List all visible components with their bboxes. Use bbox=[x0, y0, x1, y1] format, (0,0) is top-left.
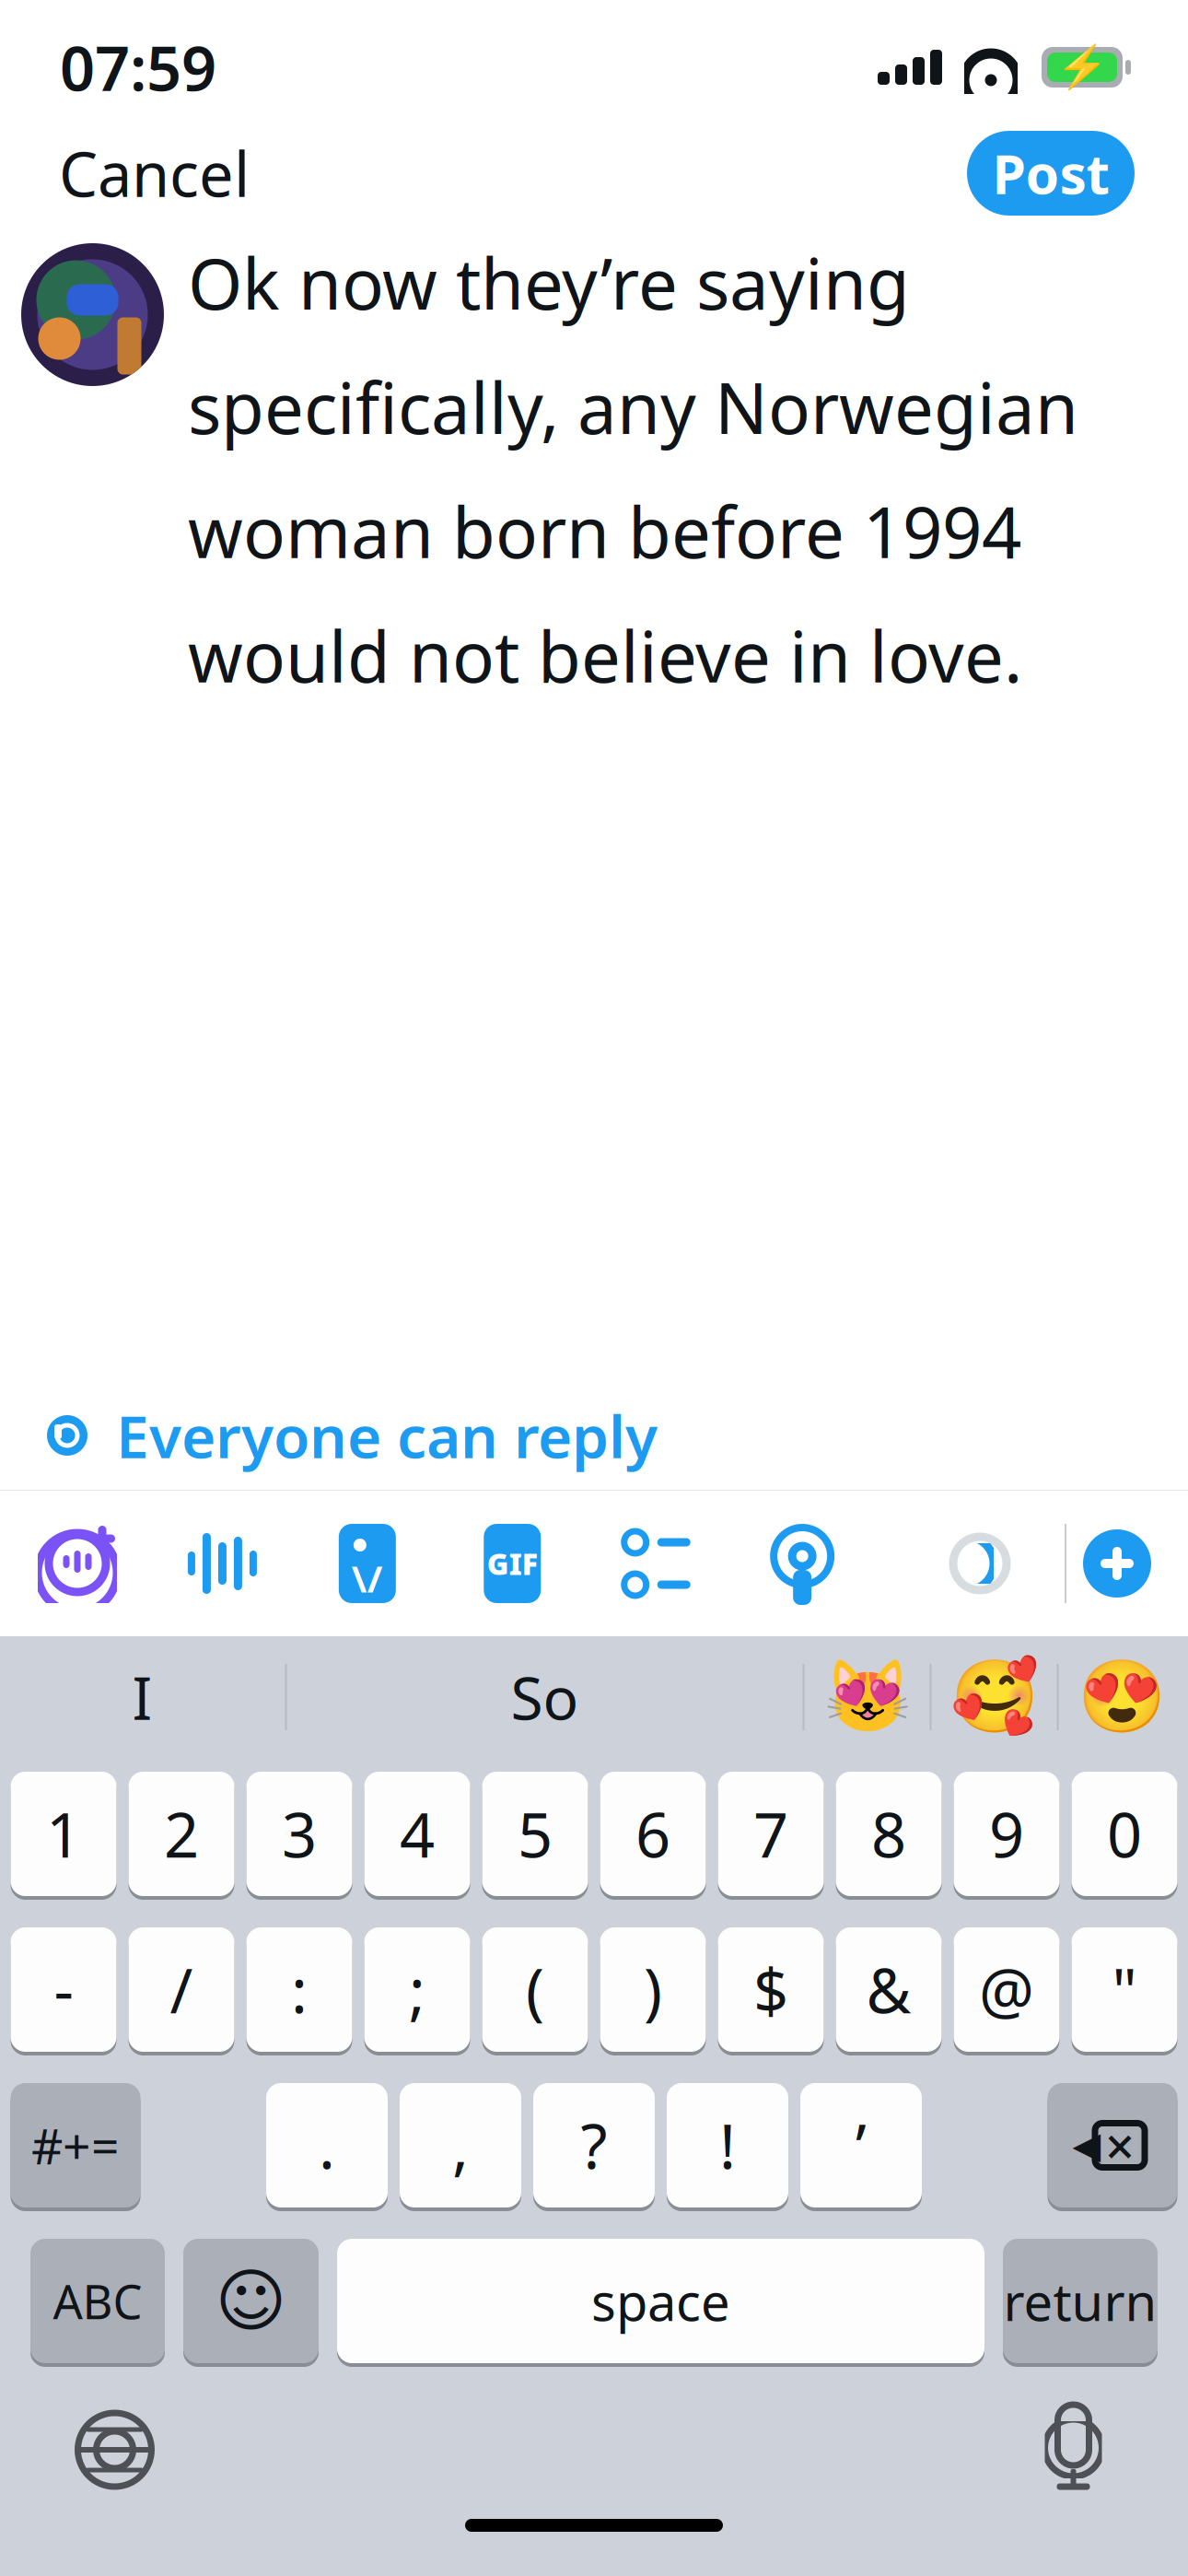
button[interactable]: Grok bbox=[26, 1512, 129, 1615]
staticText: Post bbox=[992, 137, 1109, 209]
button[interactable]: " bbox=[1072, 1925, 1177, 2055]
button[interactable]: 1 bbox=[11, 1769, 116, 1899]
staticText: 2 bbox=[164, 1793, 199, 1875]
button[interactable]: @ bbox=[954, 1925, 1060, 2055]
button[interactable]: Cancel bbox=[42, 119, 266, 227]
staticText: $ bbox=[753, 1949, 788, 2030]
staticText: 😍 bbox=[1077, 1656, 1165, 1738]
staticText: Cancel bbox=[59, 132, 250, 214]
button[interactable]: Photos bbox=[316, 1512, 419, 1615]
staticText: I bbox=[132, 1658, 152, 1736]
button[interactable]: I bbox=[0, 1646, 285, 1748]
staticText: . bbox=[319, 2104, 335, 2186]
staticText: " bbox=[1112, 1949, 1137, 2030]
button[interactable]: 8 bbox=[836, 1769, 942, 1899]
button[interactable]: Location bbox=[751, 1512, 854, 1615]
button[interactable]: ABC bbox=[30, 2236, 165, 2366]
staticText: 0 bbox=[1107, 1793, 1142, 1875]
button[interactable]: : bbox=[246, 1925, 352, 2055]
staticText: Ok now they’re saying specifically, any … bbox=[188, 236, 1078, 702]
button[interactable]: $ bbox=[718, 1925, 824, 2055]
staticText: ’ bbox=[856, 2104, 867, 2186]
button[interactable]: . bbox=[266, 2080, 388, 2210]
staticText: @ bbox=[979, 1949, 1034, 2030]
staticText: : bbox=[291, 1949, 308, 2030]
staticText: So bbox=[511, 1658, 579, 1736]
button[interactable]: ’ bbox=[800, 2080, 922, 2210]
staticText: ; bbox=[409, 1949, 425, 2030]
staticText: 07:59 bbox=[60, 26, 216, 108]
staticText: 1 bbox=[46, 1793, 81, 1875]
staticText: ◀ bbox=[1072, 2124, 1101, 2166]
staticText: return bbox=[1003, 2267, 1157, 2335]
button[interactable]: ) bbox=[600, 1925, 706, 2055]
staticText: #+= bbox=[31, 2113, 120, 2178]
staticText: 6 bbox=[635, 1793, 670, 1875]
staticText: , bbox=[452, 2104, 469, 2186]
staticText: \/ bbox=[352, 1554, 383, 1603]
button[interactable]: Audio bbox=[171, 1512, 274, 1615]
button[interactable]: Smiling face with hearts emoji bbox=[932, 1646, 1057, 1748]
staticText: ) bbox=[644, 1949, 662, 2030]
button[interactable]: , bbox=[400, 2080, 521, 2210]
staticText: / bbox=[170, 1949, 193, 2030]
staticText: ! bbox=[719, 2104, 736, 2186]
button[interactable]: Dictation bbox=[1013, 2390, 1133, 2510]
button[interactable]: space bbox=[337, 2236, 984, 2366]
button[interactable]: ! bbox=[667, 2080, 788, 2210]
button[interactable]: ( bbox=[482, 1925, 588, 2055]
button[interactable]: & bbox=[836, 1925, 942, 2055]
button[interactable]: Everyone can reply bbox=[0, 1374, 704, 1497]
staticText: Everyone can reply bbox=[116, 1396, 658, 1475]
button[interactable]: return bbox=[1003, 2236, 1158, 2366]
button[interactable]: Next keyboard bbox=[55, 2390, 175, 2510]
staticText: × bbox=[1105, 2111, 1135, 2180]
staticText: ⚡ bbox=[1056, 43, 1108, 91]
button[interactable]: 0 bbox=[1072, 1769, 1177, 1899]
staticText: 5 bbox=[518, 1793, 553, 1875]
staticText: space bbox=[591, 2267, 730, 2335]
staticText: 9 bbox=[989, 1793, 1024, 1875]
button[interactable]: ? bbox=[533, 2080, 655, 2210]
button[interactable]: Delete bbox=[1048, 2080, 1177, 2210]
staticText: 🥰 bbox=[950, 1656, 1038, 1738]
button[interactable]: GIF bbox=[461, 1512, 564, 1615]
button[interactable]: #+= bbox=[11, 2080, 140, 2210]
button[interactable]: 2 bbox=[128, 1769, 234, 1899]
button[interactable]: Cat heart eyes emoji bbox=[804, 1646, 930, 1748]
button[interactable]: / bbox=[128, 1925, 234, 2055]
button[interactable]: 9 bbox=[954, 1769, 1060, 1899]
staticText: 4 bbox=[400, 1793, 435, 1875]
staticText: ☺ bbox=[215, 2262, 287, 2340]
staticText: - bbox=[54, 1949, 73, 2030]
staticText: GIF bbox=[487, 1544, 538, 1583]
button[interactable]: 4 bbox=[364, 1769, 470, 1899]
button[interactable]: Emoji keyboard bbox=[183, 2236, 319, 2366]
staticText: ( bbox=[526, 1949, 544, 2030]
button[interactable]: Add post bbox=[1066, 1513, 1168, 1614]
button[interactable]: ; bbox=[364, 1925, 470, 2055]
button[interactable]: Poll bbox=[606, 1512, 709, 1615]
button[interactable]: 6 bbox=[600, 1769, 706, 1899]
button[interactable]: So bbox=[287, 1646, 803, 1748]
staticText: 😻 bbox=[823, 1656, 911, 1738]
staticText: & bbox=[866, 1949, 911, 2030]
button[interactable]: - bbox=[11, 1925, 116, 2055]
staticText: ? bbox=[581, 2104, 607, 2186]
button[interactable]: Post bbox=[967, 131, 1135, 216]
staticText: 3 bbox=[282, 1793, 317, 1875]
staticText: 7 bbox=[753, 1793, 788, 1875]
staticText: 8 bbox=[871, 1793, 906, 1875]
button[interactable]: 3 bbox=[246, 1769, 352, 1899]
button[interactable]: 5 bbox=[482, 1769, 588, 1899]
button[interactable]: 7 bbox=[718, 1769, 824, 1899]
staticText: ABC bbox=[53, 2270, 142, 2332]
button[interactable]: Heart eyes emoji bbox=[1059, 1646, 1184, 1748]
